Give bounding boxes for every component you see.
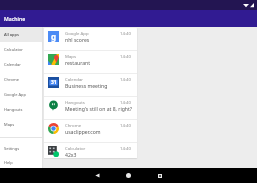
button[interactable]: All apps <box>0 27 42 42</box>
button[interactable]: Calendar <box>0 57 42 72</box>
staticText: Hangouts <box>4 107 23 112</box>
staticText: Calculator <box>4 47 23 52</box>
staticText: g <box>51 31 57 42</box>
staticText: Maps <box>4 122 15 127</box>
button[interactable]: Calculator <box>0 42 42 57</box>
staticText: Chrome <box>4 77 19 82</box>
staticText: 14:40 <box>120 30 131 36</box>
button[interactable]: Maps <box>44 51 137 74</box>
staticText: Chrome <box>65 122 82 128</box>
staticText: Machine <box>4 15 26 22</box>
staticText: 42x3 <box>65 152 135 158</box>
staticText: Calculator <box>65 145 86 151</box>
staticText: All apps <box>4 32 20 37</box>
staticText: Maps <box>65 53 77 59</box>
staticText: usaclipper.com <box>65 129 135 136</box>
staticText: Help <box>4 160 13 165</box>
staticText: Business meeting <box>65 83 135 90</box>
button[interactable]: Calculator <box>44 143 137 158</box>
button[interactable]: Hangouts <box>44 97 137 120</box>
staticText: 14:40 <box>120 76 131 82</box>
button[interactable]: Maps <box>0 117 42 132</box>
staticText: Calendar <box>65 76 84 82</box>
button[interactable]: Chrome <box>44 120 137 143</box>
button[interactable]: Help <box>0 156 42 168</box>
button[interactable]: Chrome <box>0 72 42 87</box>
staticText: Hangouts <box>65 99 85 105</box>
staticText: Google App <box>65 30 89 36</box>
staticText: 14:40 <box>120 53 131 59</box>
staticText: 14:40 <box>120 99 131 105</box>
staticText: 31 <box>51 79 57 86</box>
button[interactable]: Back <box>90 168 105 183</box>
button[interactable]: Settings <box>0 141 42 156</box>
button[interactable]: 31 <box>44 74 137 97</box>
staticText: restaurant <box>65 60 135 67</box>
staticText: Google App <box>4 92 27 97</box>
staticText: Settings <box>4 146 20 151</box>
button[interactable]: Hangouts <box>0 102 42 117</box>
button[interactable]: g <box>44 28 137 51</box>
button[interactable]: Recents <box>152 168 167 183</box>
staticText: Meeting's still on at 8, right? <box>65 106 135 113</box>
staticText: nhl scores <box>65 37 135 44</box>
button[interactable]: Home <box>121 168 136 183</box>
staticText: Calendar <box>4 62 21 67</box>
button[interactable]: Google App <box>0 87 42 102</box>
staticText: 14:40 <box>120 145 131 151</box>
staticText: 14:40 <box>120 122 131 128</box>
